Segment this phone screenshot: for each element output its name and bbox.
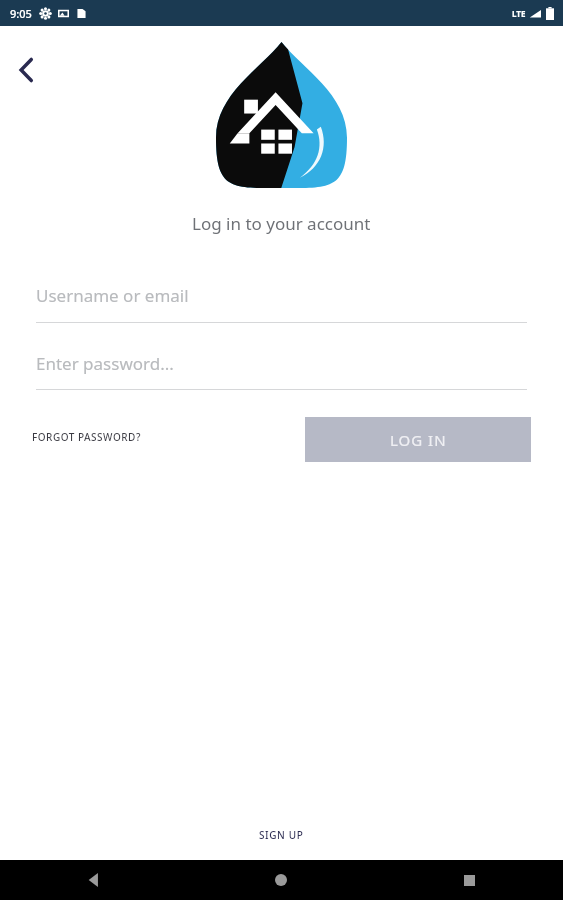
button[interactable]: FORGOT PASSWORD? <box>20 422 153 452</box>
button[interactable]: Username or email <box>36 284 527 323</box>
staticText: LOG IN <box>390 430 447 450</box>
button[interactable]: Home <box>187 860 375 900</box>
button[interactable]: Enter password... <box>36 352 527 390</box>
button[interactable]: SIGN UP <box>245 821 318 849</box>
button[interactable]: Recent apps <box>375 860 563 900</box>
staticText: Username or email <box>36 284 189 307</box>
staticText: Log in to your account <box>192 212 371 235</box>
staticText: LTE <box>512 8 526 19</box>
button[interactable]: LOG IN <box>305 417 531 462</box>
button[interactable]: Back <box>0 860 187 900</box>
button[interactable]: Back <box>4 48 48 92</box>
staticText: 9:05 <box>10 6 32 21</box>
staticText: FORGOT PASSWORD? <box>32 430 141 444</box>
staticText: Enter password... <box>36 352 174 375</box>
staticText: SIGN UP <box>259 828 304 842</box>
